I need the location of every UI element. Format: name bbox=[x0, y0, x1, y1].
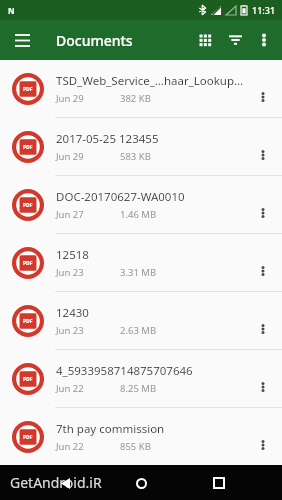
staticText: PDF bbox=[23, 434, 33, 441]
button[interactable]: Home bbox=[128, 470, 154, 496]
staticText: 4_5933958714875707646 bbox=[56, 363, 193, 379]
button[interactable]: Sort bbox=[220, 25, 250, 55]
button[interactable]: PDF bbox=[0, 118, 282, 175]
staticText: 583 KB bbox=[120, 150, 151, 163]
staticText: Jun 22 bbox=[56, 440, 84, 453]
button[interactable]: File options bbox=[248, 234, 278, 291]
button[interactable]: Back bbox=[52, 470, 78, 496]
staticText: Documents bbox=[56, 31, 133, 50]
staticText: Jun 22 bbox=[56, 382, 84, 395]
staticText: Jun 23 bbox=[56, 324, 84, 337]
button[interactable]: PDF bbox=[0, 176, 282, 233]
staticText: TSD_Web_Service_…haar_Lookup_API bbox=[56, 73, 248, 89]
button[interactable]: File options bbox=[248, 292, 278, 349]
button[interactable]: File options bbox=[248, 176, 278, 233]
staticText: DOC-20170627-WA0010 bbox=[56, 189, 185, 205]
staticText: 12518 bbox=[56, 247, 89, 263]
staticText: PDF bbox=[23, 86, 33, 93]
button[interactable]: File options bbox=[248, 118, 278, 175]
button[interactable]: PDF bbox=[0, 292, 282, 349]
staticText: Jun 23 bbox=[56, 266, 84, 279]
staticText: 2.63 MB bbox=[120, 324, 157, 337]
staticText: 8.25 MB bbox=[120, 382, 157, 395]
staticText: 1.46 MB bbox=[120, 208, 157, 221]
staticText: 12430 bbox=[56, 305, 89, 321]
button[interactable]: More options bbox=[250, 26, 278, 54]
staticText: PDF bbox=[23, 318, 33, 325]
staticText: N bbox=[8, 5, 15, 16]
staticText: PDF bbox=[23, 144, 33, 151]
staticText: 11:31 bbox=[252, 4, 276, 16]
staticText: 382 KB bbox=[120, 92, 151, 105]
staticText: PDF bbox=[23, 260, 33, 267]
button[interactable]: PDF bbox=[0, 60, 282, 117]
button[interactable]: PDF bbox=[0, 350, 282, 407]
staticText: Jun 27 bbox=[56, 208, 84, 221]
staticText: 2017-05-25 123455 bbox=[56, 131, 159, 147]
button[interactable]: Grid view bbox=[190, 25, 220, 55]
button[interactable]: File options bbox=[248, 350, 278, 407]
staticText: GetAndroid.iR bbox=[10, 473, 102, 492]
button[interactable]: PDF bbox=[0, 234, 282, 291]
staticText: PDF bbox=[23, 376, 33, 383]
staticText: 7th pay commission bbox=[56, 421, 165, 437]
staticText: 3.31 MB bbox=[120, 266, 157, 279]
staticText: PDF bbox=[23, 202, 33, 209]
button[interactable]: Open navigation drawer bbox=[8, 26, 36, 54]
button[interactable]: File options bbox=[248, 408, 278, 465]
staticText: Jun 29 bbox=[56, 150, 84, 163]
button[interactable]: Recent apps bbox=[206, 470, 232, 496]
staticText: Jun 29 bbox=[56, 92, 84, 105]
button[interactable]: PDF bbox=[0, 408, 282, 465]
staticText: 855 KB bbox=[120, 440, 151, 453]
button[interactable]: File options bbox=[248, 60, 278, 117]
